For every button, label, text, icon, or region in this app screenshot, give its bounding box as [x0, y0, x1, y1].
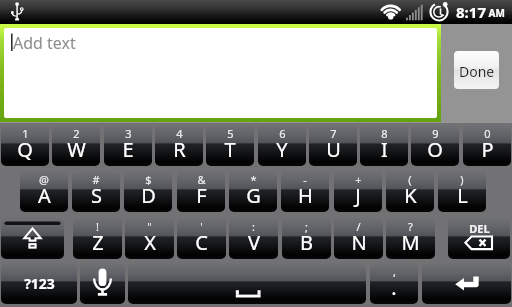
staticText: W [67, 136, 86, 163]
button[interactable]: : [229, 218, 278, 259]
button[interactable]: " [125, 218, 174, 259]
staticText: ' [200, 219, 203, 234]
button[interactable]: ) [438, 171, 486, 212]
staticText: , [393, 264, 396, 279]
staticText: 3 [125, 126, 132, 141]
staticText: DEL [469, 221, 490, 236]
staticText: 8:17 [456, 2, 486, 22]
staticText: ; [305, 219, 308, 234]
button[interactable]: 4 [155, 125, 203, 166]
button[interactable]: 6 [258, 125, 306, 166]
button[interactable]: 8 [360, 125, 408, 166]
staticText: ! [96, 219, 99, 234]
button[interactable]: Done [454, 51, 499, 89]
staticText: K [404, 182, 417, 209]
staticText: 1 [22, 126, 29, 141]
button[interactable]: Shift [1, 218, 64, 259]
staticText: C [195, 229, 208, 256]
staticText: 8 [381, 126, 388, 141]
button[interactable]: 9 [411, 125, 459, 166]
staticText: O [427, 136, 443, 163]
staticText: R [173, 136, 186, 163]
staticText: V [248, 229, 260, 256]
staticText: B [300, 229, 313, 256]
button[interactable]: Delete [448, 218, 510, 259]
staticText: 6 [279, 126, 286, 141]
staticText: 2 [73, 126, 80, 141]
staticText: I [381, 136, 388, 163]
staticText: D [141, 182, 156, 209]
staticText: AM [486, 6, 505, 20]
staticText: H [298, 182, 313, 209]
staticText: 5 [227, 126, 234, 141]
button[interactable]: 3 [104, 125, 152, 166]
button[interactable]: & [177, 171, 225, 212]
staticText: Q [17, 136, 33, 163]
staticText: Y [276, 136, 288, 163]
staticText: G [246, 182, 261, 209]
button[interactable]: 0 [463, 125, 511, 166]
staticText: # [92, 172, 100, 187]
staticText: F [196, 182, 207, 209]
staticText: 4 [176, 126, 183, 141]
staticText: J [355, 182, 361, 209]
button[interactable]: Voice input [80, 263, 125, 304]
button[interactable]: ! [73, 218, 122, 259]
button[interactable]: ' [177, 218, 226, 259]
staticText: ? [408, 219, 413, 234]
button[interactable]: ; [282, 218, 331, 259]
button[interactable]: # [72, 171, 120, 212]
button[interactable]: + [334, 171, 382, 212]
staticText: . [391, 274, 397, 301]
button[interactable]: / [334, 218, 383, 259]
staticText: ?123 [24, 274, 55, 293]
button[interactable]: Add text [4, 28, 437, 118]
button[interactable]: $ [124, 171, 172, 212]
button[interactable]: ( [386, 171, 434, 212]
staticText: & [197, 172, 206, 187]
staticText: Z [92, 229, 104, 256]
staticText: S [91, 182, 102, 209]
staticText: + [355, 172, 362, 187]
staticText: - [303, 172, 307, 187]
button[interactable]: ? [386, 218, 435, 259]
staticText: N [351, 229, 367, 256]
button[interactable]: ?123 [1, 263, 77, 304]
button[interactable]: 1 [1, 125, 49, 166]
staticText: * [250, 172, 257, 187]
staticText: Add text [13, 32, 76, 54]
staticText: : [252, 219, 255, 234]
button[interactable]: 7 [309, 125, 357, 166]
staticText: X [144, 229, 156, 256]
staticText: E [122, 136, 134, 163]
staticText: ) [460, 172, 464, 187]
staticText: @ [39, 172, 49, 187]
button[interactable]: - [281, 171, 329, 212]
button[interactable]: @ [20, 171, 68, 212]
button[interactable]: Enter [422, 263, 511, 304]
staticText: P [481, 136, 494, 163]
staticText: M [401, 229, 420, 256]
staticText: 7 [330, 126, 337, 141]
staticText: / [356, 219, 361, 234]
staticText: L [457, 182, 468, 209]
staticText: Done [459, 62, 495, 81]
staticText: 9 [432, 126, 439, 141]
staticText: ( [408, 172, 412, 187]
button[interactable]: Space [128, 263, 366, 304]
staticText: A [38, 182, 51, 209]
staticText: T [224, 136, 236, 163]
button[interactable]: , [370, 263, 418, 304]
button[interactable]: 2 [52, 125, 100, 166]
button[interactable]: 5 [206, 125, 254, 166]
staticText: $ [145, 172, 152, 187]
button[interactable]: * [229, 171, 277, 212]
staticText: " [147, 219, 152, 234]
staticText: U [326, 136, 341, 163]
staticText: 0 [484, 126, 491, 141]
